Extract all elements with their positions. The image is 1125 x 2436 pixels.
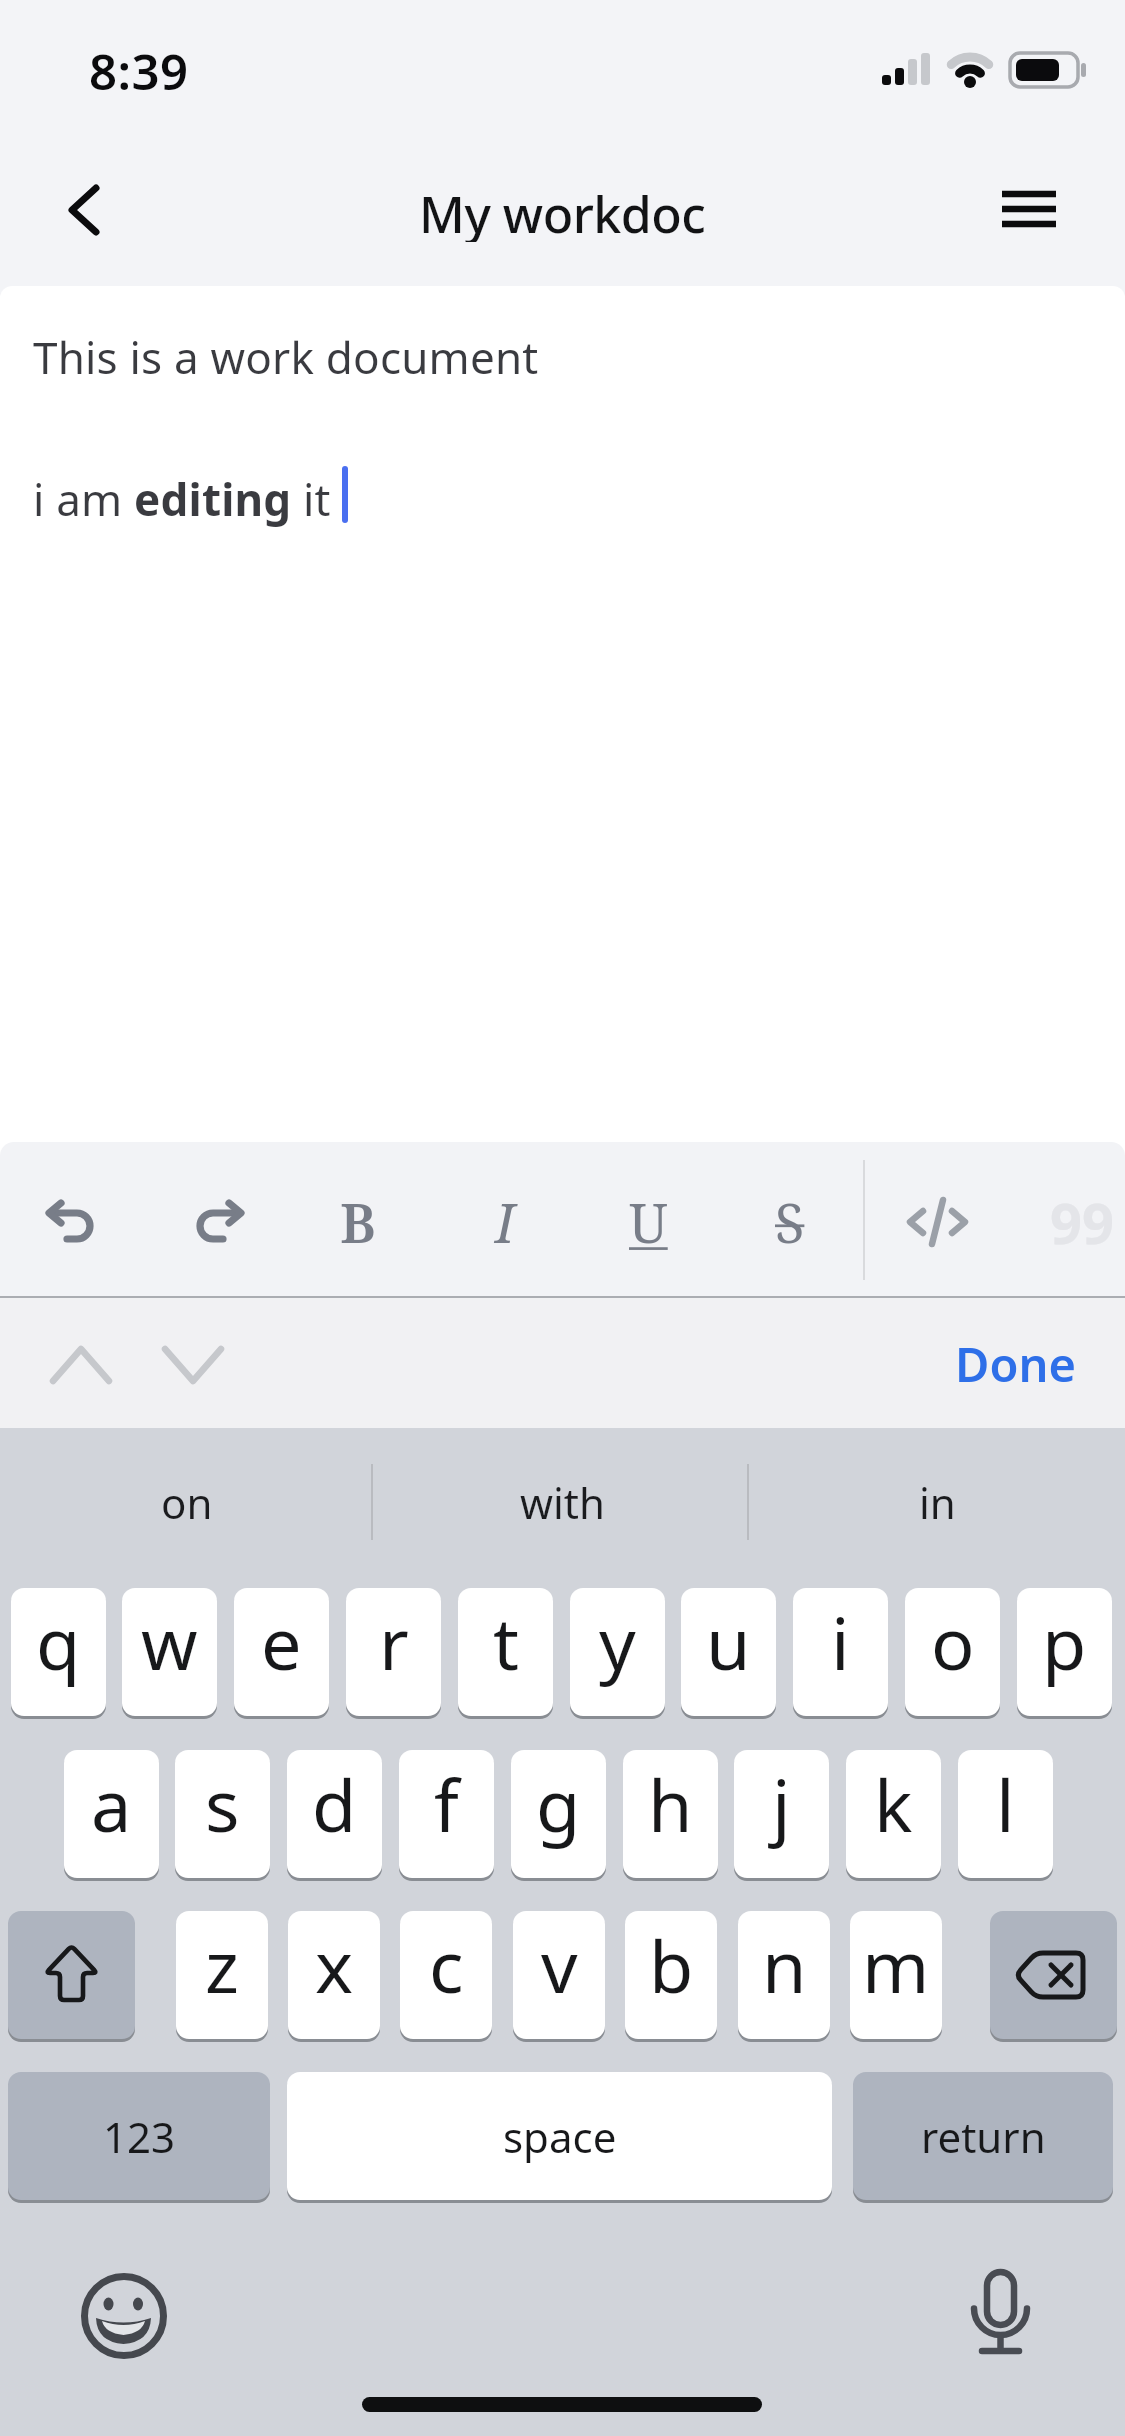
staticText: i	[831, 1593, 850, 1691]
button[interactable]: e	[234, 1588, 329, 1716]
button[interactable]: q	[11, 1588, 106, 1716]
button[interactable]: i	[793, 1588, 888, 1716]
staticText: c	[429, 1916, 464, 2014]
button[interactable]: j	[734, 1750, 829, 1878]
button[interactable]: h	[623, 1750, 718, 1878]
button[interactable]: w	[122, 1588, 217, 1716]
button[interactable]: S	[742, 1172, 838, 1272]
button[interactable]: f	[399, 1750, 494, 1878]
staticText: on	[161, 1474, 213, 1531]
staticText: u	[706, 1593, 751, 1691]
button[interactable]: x	[288, 1911, 380, 2039]
staticText: o	[931, 1593, 975, 1691]
staticText: g	[536, 1755, 581, 1853]
button[interactable]	[8, 1911, 135, 2039]
button[interactable]	[153, 1330, 238, 1400]
button[interactable]: Done	[930, 1326, 1100, 1402]
staticText: space	[503, 2108, 617, 2165]
button[interactable]: b	[625, 1911, 717, 2039]
button[interactable]: a	[64, 1750, 159, 1878]
button[interactable]: r	[346, 1588, 441, 1716]
button[interactable]: t	[458, 1588, 553, 1716]
staticText: p	[1042, 1593, 1087, 1691]
staticText: Done	[955, 1332, 1076, 1396]
staticText: U	[629, 1185, 668, 1259]
staticText: q	[36, 1593, 81, 1691]
staticText: h	[648, 1755, 693, 1853]
button[interactable]	[75, 2268, 175, 2368]
staticText: m	[862, 1916, 930, 2014]
staticText: r	[379, 1593, 409, 1691]
staticText: a	[91, 1755, 132, 1853]
staticText: b	[649, 1916, 694, 2014]
staticText: s	[205, 1755, 240, 1853]
staticText: I	[495, 1185, 515, 1259]
button[interactable]: B	[310, 1172, 406, 1272]
button[interactable]: s	[175, 1750, 270, 1878]
button[interactable]: g	[511, 1750, 606, 1878]
staticText: w	[141, 1593, 198, 1691]
button[interactable]: k	[846, 1750, 941, 1878]
button[interactable]: l	[958, 1750, 1053, 1878]
staticText: e	[261, 1593, 302, 1691]
staticText: n	[762, 1916, 807, 2014]
button[interactable]	[40, 165, 130, 260]
staticText: My workdoc	[419, 180, 706, 242]
button[interactable]: p	[1017, 1588, 1112, 1716]
button[interactable]: n	[738, 1911, 830, 2039]
button[interactable]: m	[850, 1911, 942, 2039]
button[interactable]	[890, 1172, 985, 1272]
staticText: t	[493, 1593, 519, 1691]
button[interactable]: o	[905, 1588, 1000, 1716]
staticText: 99	[1050, 1184, 1115, 1260]
button[interactable]	[40, 1330, 125, 1400]
button[interactable]	[990, 1911, 1117, 2039]
staticText: f	[434, 1755, 459, 1853]
button[interactable]: on	[37, 1462, 337, 1542]
staticText: j	[772, 1755, 791, 1853]
button[interactable]	[28, 1180, 122, 1270]
staticText: l	[996, 1755, 1015, 1853]
button[interactable]: space	[287, 2072, 832, 2200]
staticText: x	[315, 1916, 354, 2014]
staticText: 123	[103, 2108, 176, 2165]
staticText: 8:39	[89, 38, 189, 105]
button[interactable]: with	[412, 1462, 712, 1542]
button[interactable]: in	[787, 1462, 1087, 1542]
button[interactable]: y	[570, 1588, 665, 1716]
staticText: i am editing it	[33, 469, 331, 529]
button[interactable]: v	[513, 1911, 605, 2039]
button[interactable]: I	[457, 1172, 553, 1272]
staticText: v	[541, 1916, 578, 2014]
button[interactable]: u	[681, 1588, 776, 1716]
staticText: d	[312, 1755, 357, 1853]
staticText: B	[340, 1185, 376, 1259]
button[interactable]: U	[600, 1172, 696, 1272]
staticText: with	[520, 1474, 605, 1531]
button[interactable]: c	[400, 1911, 492, 2039]
staticText: z	[205, 1916, 239, 2014]
button[interactable]	[950, 2268, 1050, 2368]
staticText: in	[919, 1474, 956, 1531]
staticText: S	[775, 1185, 805, 1259]
staticText: y	[599, 1593, 636, 1691]
button[interactable]: d	[287, 1750, 382, 1878]
button[interactable]: 123	[8, 2072, 270, 2200]
staticText: k	[874, 1755, 913, 1853]
button[interactable]: return	[853, 2072, 1113, 2200]
button[interactable]	[168, 1180, 262, 1270]
staticText: This is a work document	[33, 327, 539, 387]
button[interactable]: z	[176, 1911, 268, 2039]
button[interactable]	[985, 175, 1073, 245]
staticText: return	[921, 2108, 1046, 2165]
